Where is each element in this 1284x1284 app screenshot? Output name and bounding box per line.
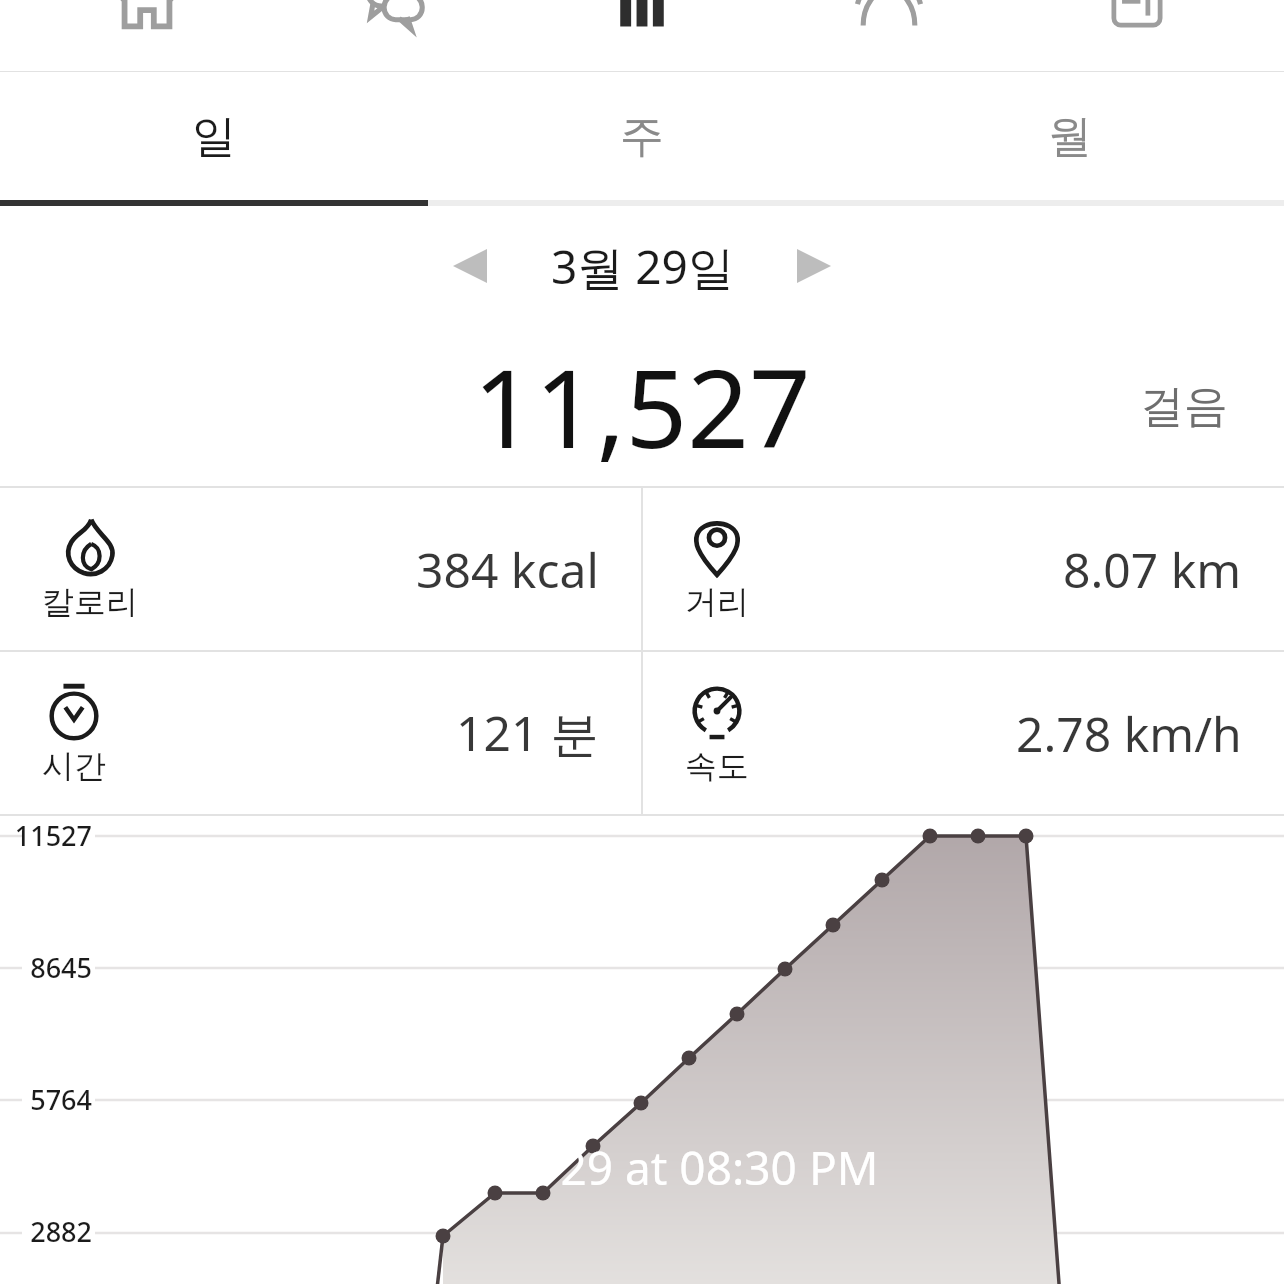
- staticText: 칼로리: [42, 582, 138, 622]
- button[interactable]: Next day: [772, 224, 856, 308]
- staticText: 384 kcal: [416, 537, 599, 602]
- staticText: 월: [1048, 109, 1092, 164]
- staticText: 3월 29일: [551, 235, 734, 298]
- button[interactable]: 시간: [0, 652, 641, 814]
- staticText: 121 분: [456, 700, 599, 766]
- button[interactable]: 거리: [643, 488, 1284, 650]
- staticText: 11,527: [473, 333, 811, 480]
- button[interactable]: 주: [428, 72, 856, 200]
- staticText: n 29 at 08:30 PM: [520, 1136, 879, 1199]
- button[interactable]: Messages: [295, 0, 495, 72]
- staticText: 2882: [30, 1213, 92, 1250]
- button[interactable]: News: [1037, 0, 1237, 72]
- staticText: 일: [192, 109, 236, 164]
- staticText: 5764: [30, 1081, 92, 1118]
- button[interactable]: 칼로리: [0, 488, 641, 650]
- staticText: 8.07 km: [1063, 537, 1242, 602]
- button[interactable]: 일: [0, 72, 428, 200]
- button[interactable]: Previous day: [428, 224, 512, 308]
- button[interactable]: Sleep: [789, 0, 989, 72]
- button[interactable]: Activity: [542, 0, 742, 72]
- staticText: 거리: [685, 582, 749, 622]
- staticText: 8645: [30, 949, 92, 986]
- staticText: 시간: [42, 746, 106, 786]
- button[interactable]: 속도: [643, 652, 1284, 814]
- staticText: 2.78 km/h: [1016, 701, 1242, 766]
- button[interactable]: Home: [47, 0, 247, 72]
- staticText: 주: [620, 109, 664, 164]
- staticText: 걸음: [1140, 379, 1228, 434]
- button[interactable]: 월: [856, 72, 1284, 200]
- staticText: 속도: [685, 746, 749, 786]
- staticText: 11527: [14, 817, 92, 854]
